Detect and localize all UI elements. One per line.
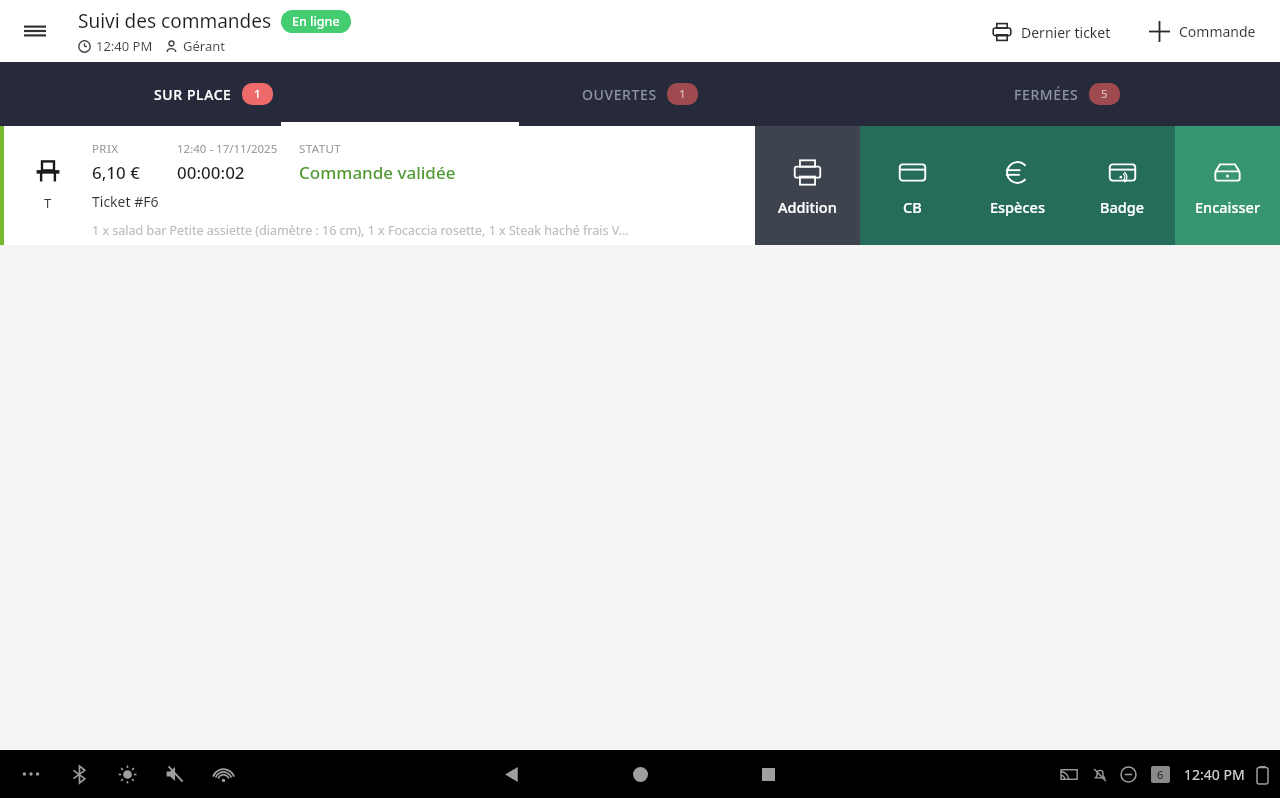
staticText: Dernier ticket [1021, 23, 1111, 42]
staticText: 00:00:02 [177, 161, 245, 184]
staticText: PRIX [92, 141, 119, 157]
staticText: 12:40 PM [1184, 765, 1245, 784]
button[interactable]: Dernier ticket [984, 14, 1119, 50]
staticText: Badge [1100, 197, 1145, 217]
staticText: FERMÉES [1014, 85, 1079, 104]
staticText: Gérant [183, 37, 225, 55]
staticText: 6 [1157, 767, 1164, 782]
button[interactable]: More [14, 757, 48, 791]
staticText: 12:40 PM [96, 37, 153, 55]
button[interactable]: Wi-Fi [206, 757, 240, 791]
button[interactable]: Espèces [965, 126, 1070, 245]
button[interactable]: En ligne [281, 10, 351, 33]
staticText: 1 [679, 86, 686, 102]
button[interactable]: T [0, 126, 755, 245]
button[interactable]: Commande [1141, 13, 1264, 50]
staticText: En ligne [292, 13, 340, 30]
button[interactable]: FERMÉES [853, 62, 1280, 126]
button[interactable]: CB [860, 126, 965, 245]
staticText: OUVERTES [582, 85, 657, 104]
button[interactable]: Brightness [110, 757, 144, 791]
button[interactable]: Menu [14, 10, 56, 52]
staticText: T [44, 194, 52, 212]
button[interactable]: Addition [755, 126, 860, 245]
staticText: Encaisser [1195, 197, 1261, 217]
staticText: Commande validée [299, 161, 456, 184]
button[interactable]: OUVERTES [426, 62, 853, 126]
staticText: 5 [1101, 86, 1108, 102]
staticText: 12:40 - 17/11/2025 [177, 141, 278, 157]
button[interactable]: Home [618, 752, 662, 796]
staticText: 1 x salad bar Petite assiette (diamètre … [92, 222, 629, 239]
button[interactable]: Back [490, 752, 534, 796]
staticText: Espèces [990, 197, 1045, 217]
staticText: Commande [1179, 22, 1256, 41]
staticText: SUR PLACE [154, 85, 232, 104]
staticText: Suivi des commandes [78, 8, 272, 34]
staticText: 1 [254, 86, 261, 102]
button[interactable]: Bluetooth [62, 757, 96, 791]
button[interactable]: Mute [158, 757, 192, 791]
staticText: CB [903, 197, 922, 217]
button[interactable]: SUR PLACE [0, 62, 426, 126]
button[interactable]: Badge [1070, 126, 1175, 245]
staticText: STATUT [299, 141, 342, 157]
staticText: 6,10 € [92, 161, 140, 184]
button[interactable]: Encaisser [1175, 126, 1280, 245]
staticText: Addition [778, 197, 837, 217]
button[interactable]: Recents [746, 752, 790, 796]
staticText: Ticket #F6 [92, 192, 159, 211]
